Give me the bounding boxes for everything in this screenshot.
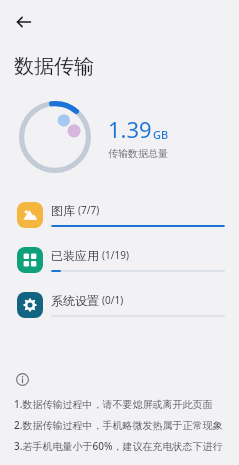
staticText: 数据传输 [14,54,94,79]
other: Info [16,373,29,386]
staticText: 1.数据传输过程中，请不要熄屏或离开此页面 [14,397,213,411]
staticText: 1.39 [108,114,152,144]
staticText: 2.数据传输过程中，手机略微发热属于正常现象 [14,418,223,432]
staticText: 图库 [51,203,75,218]
button[interactable]: Back [4,2,44,42]
button[interactable]: 已装应用 [0,244,239,276]
button[interactable]: 系统设置 [0,289,239,321]
button[interactable]: 图库 [0,199,239,231]
staticText: 系统设置 [51,293,99,308]
staticText: 已装应用 [51,248,99,263]
staticText: 3.若手机电量小于60%，建议在充电状态下进行 [14,439,223,453]
staticText: (1/19) [102,248,129,262]
staticText: (7/7) [78,203,100,217]
staticText: 传输数据总量 [108,147,168,160]
staticText: GB [153,127,169,142]
staticText: (0/1) [102,293,124,307]
